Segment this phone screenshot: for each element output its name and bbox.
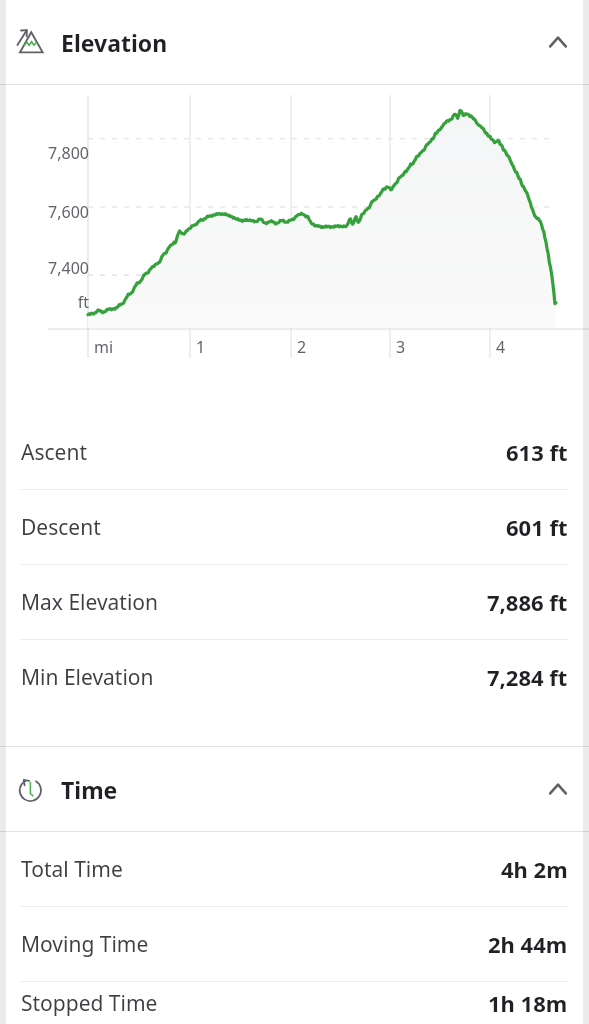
staticText: 7,400 xyxy=(27,257,89,279)
button[interactable]: Collapse Elevation section xyxy=(0,0,589,84)
staticText: 613 ft xyxy=(506,437,568,467)
button[interactable]: Max Elevation xyxy=(0,565,589,639)
staticText: 7,284 ft xyxy=(487,662,568,692)
staticText: 2 xyxy=(297,336,337,358)
staticText: 3 xyxy=(396,336,436,358)
staticText: 4 xyxy=(496,336,536,358)
button[interactable]: Stopped Time xyxy=(0,982,589,1024)
staticText: 2h 44m xyxy=(488,929,568,959)
staticText: Total Time xyxy=(21,855,123,884)
staticText: 1 xyxy=(196,336,236,358)
button[interactable]: Descent xyxy=(0,490,589,564)
button[interactable]: Ascent xyxy=(0,415,589,489)
staticText: 601 ft xyxy=(506,512,568,542)
staticText: mi xyxy=(94,336,134,358)
staticText: Descent xyxy=(21,513,101,542)
button[interactable]: Min Elevation xyxy=(0,640,589,714)
staticText: Min Elevation xyxy=(21,663,154,692)
staticText: 7,600 xyxy=(27,201,89,223)
staticText: 1h 18m xyxy=(488,988,568,1018)
staticText: Max Elevation xyxy=(21,588,159,617)
staticText: Elevation xyxy=(61,27,168,58)
button[interactable]: Collapse Time section xyxy=(0,747,589,831)
button[interactable]: Moving Time xyxy=(0,907,589,981)
button[interactable]: Total Time xyxy=(0,832,589,906)
staticText: 7,886 ft xyxy=(487,587,568,617)
staticText: ft xyxy=(27,291,89,313)
staticText: Time xyxy=(61,774,118,805)
staticText: 7,800 xyxy=(27,142,89,164)
staticText: 4h 2m xyxy=(501,854,568,884)
staticText: Moving Time xyxy=(21,930,149,959)
staticText: Ascent xyxy=(21,438,87,467)
staticText: Stopped Time xyxy=(21,989,158,1018)
